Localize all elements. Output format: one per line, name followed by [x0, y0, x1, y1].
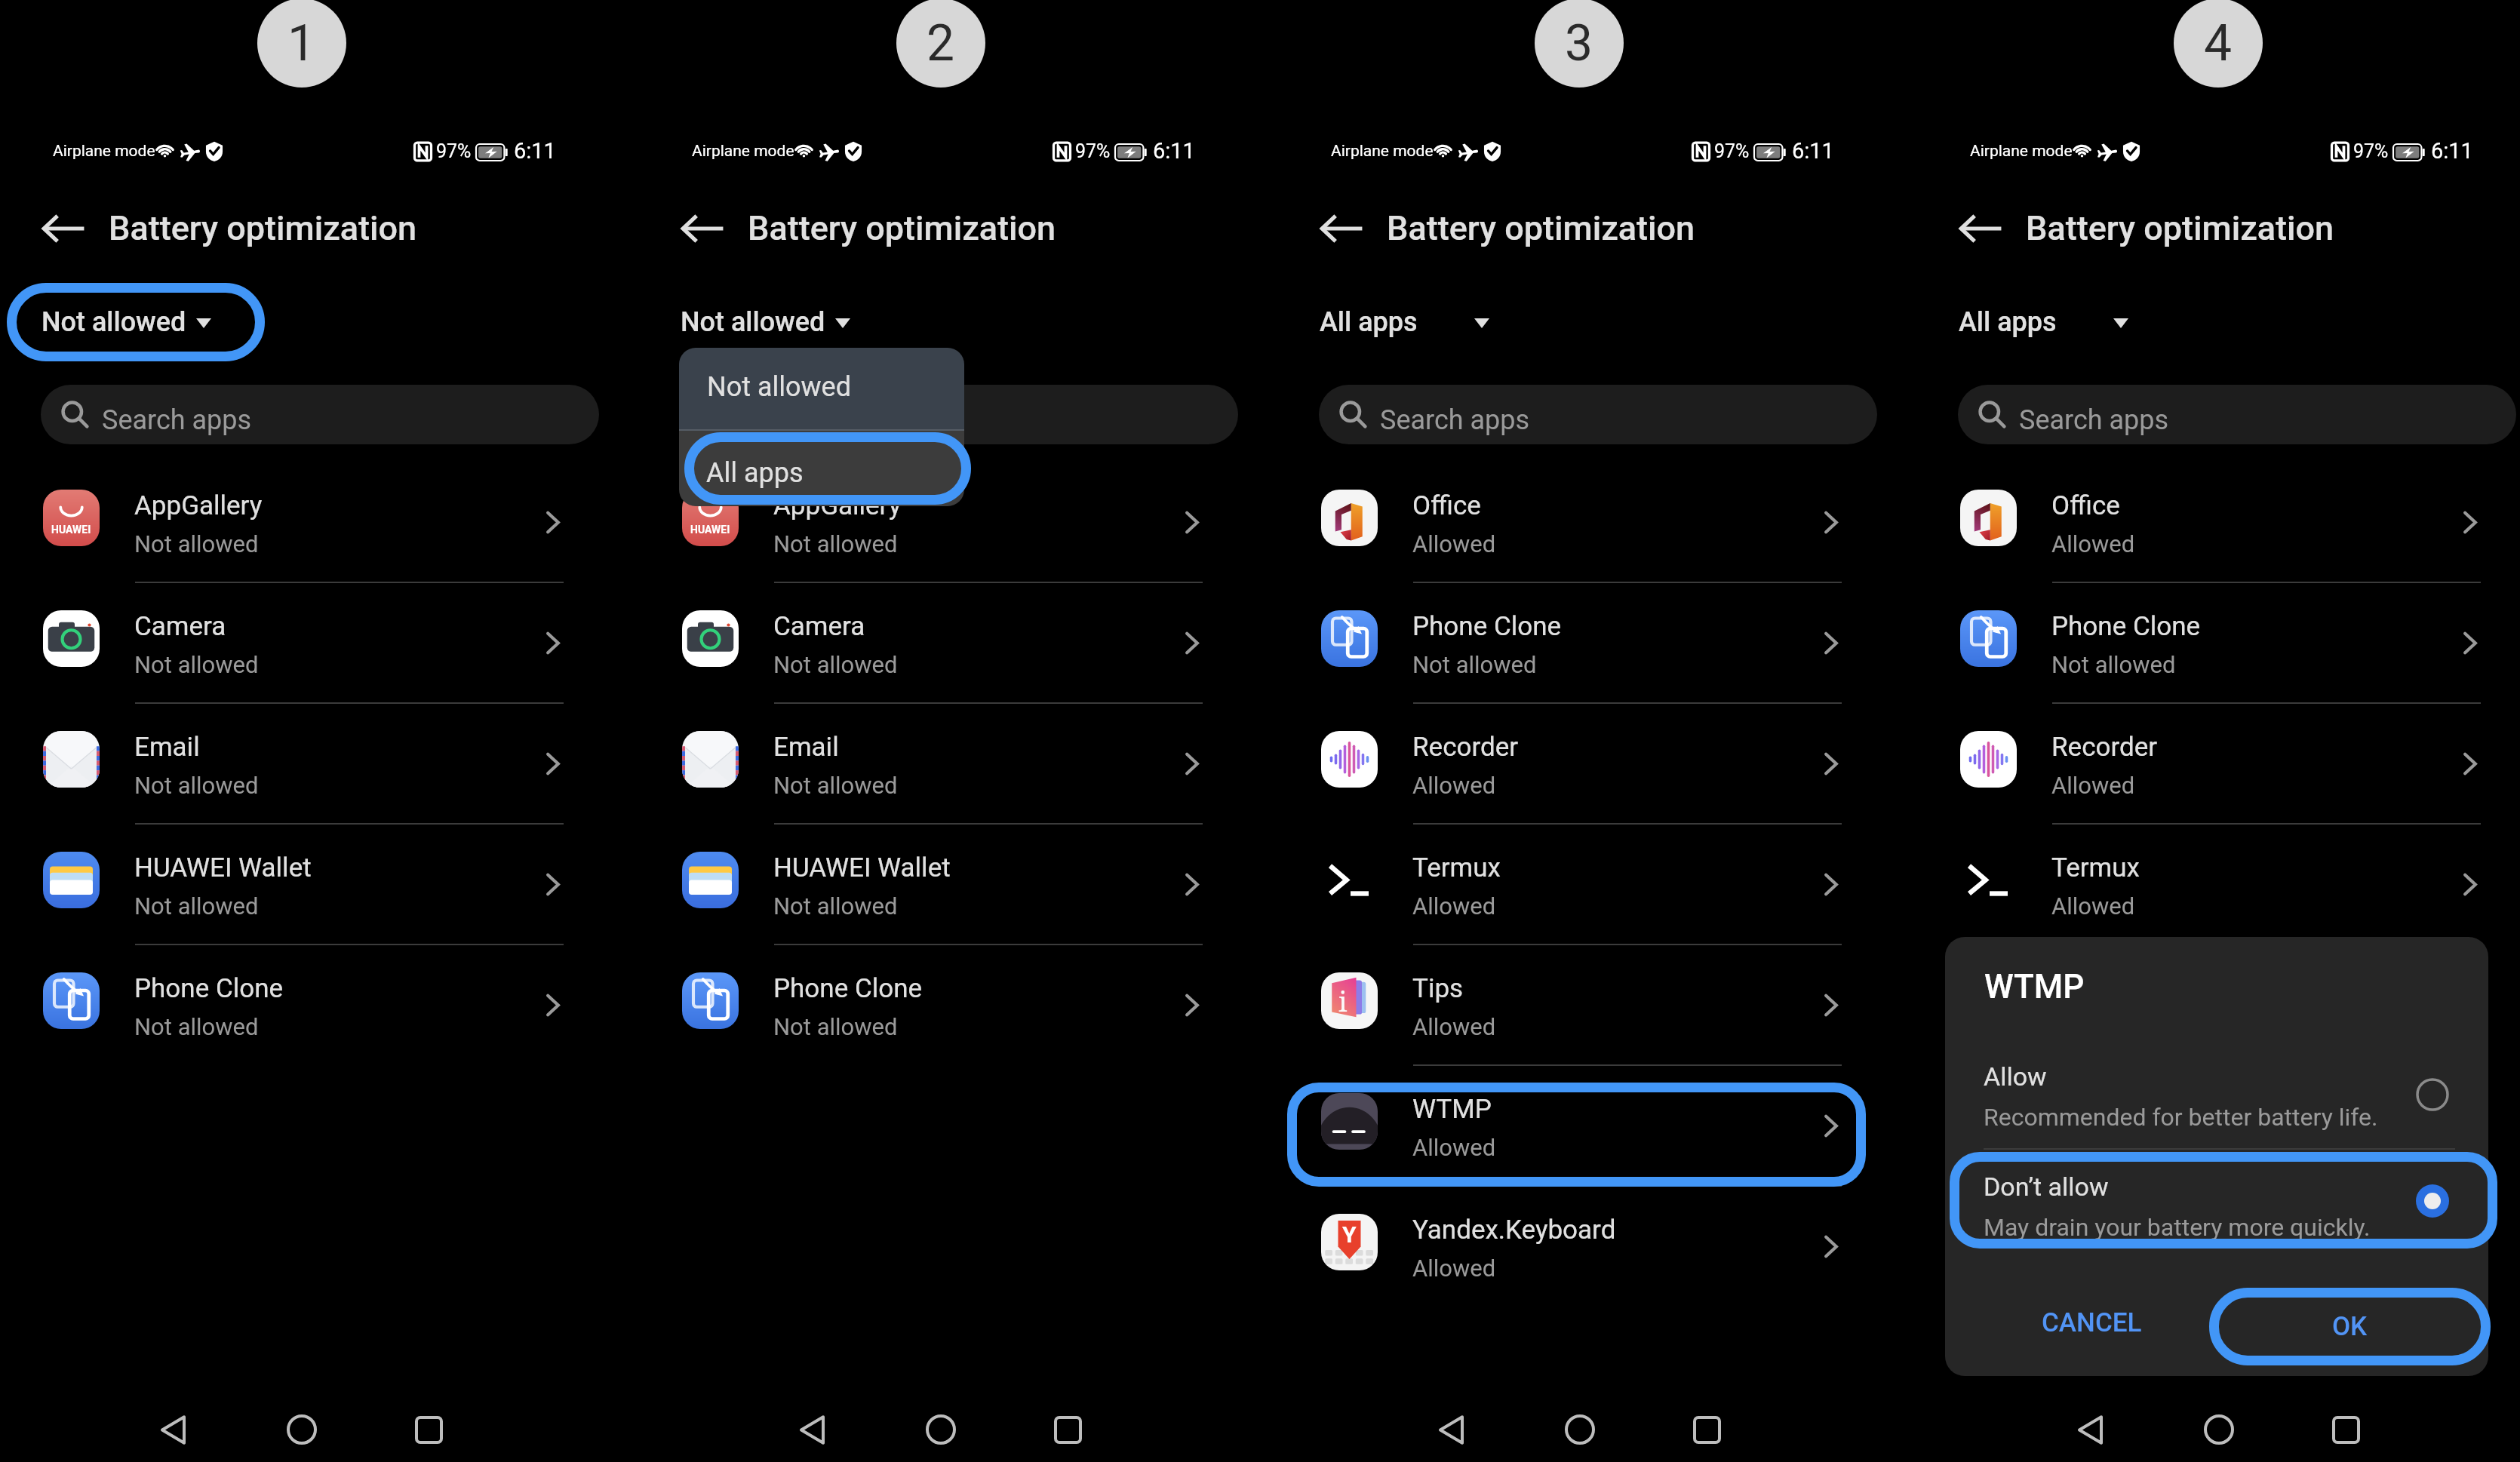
staticText: Not allowed — [773, 772, 898, 799]
button[interactable]: Camera — [0, 582, 639, 703]
button[interactable]: Don’t allow — [1945, 1156, 2488, 1258]
button[interactable]: Back — [1950, 198, 2011, 259]
button[interactable]: Not allowed — [35, 292, 261, 352]
staticText: Allowed — [1412, 772, 1496, 799]
button[interactable]: Y — [1917, 1186, 2520, 1307]
button[interactable]: Termux — [1278, 824, 1917, 944]
staticText: HUAWEI — [51, 524, 91, 536]
staticText: Not allowed — [773, 1013, 898, 1040]
button[interactable]: Email — [639, 703, 1278, 824]
staticText: Airplane mode — [1331, 142, 1434, 161]
staticText: WTMP — [1412, 1094, 1492, 1125]
staticText: Not allowed — [1412, 651, 1537, 678]
button[interactable]: Back — [672, 198, 733, 259]
button[interactable]: HUAWEI — [0, 462, 639, 582]
button[interactable]: CANCEL — [2016, 1288, 2167, 1356]
button[interactable]: i — [1917, 944, 2520, 1065]
button[interactable]: Home — [1535, 1384, 1625, 1462]
staticText: Y — [1981, 1221, 1996, 1248]
button[interactable]: Home — [257, 1384, 347, 1462]
staticText: AppGallery — [773, 490, 902, 521]
staticText: 3 — [1565, 14, 1593, 72]
button[interactable]: HUAWEI — [639, 462, 1278, 582]
button[interactable]: Recents — [1022, 1384, 1113, 1462]
staticText: Not allowed — [134, 651, 259, 678]
staticText: Not allowed — [773, 530, 898, 557]
button[interactable]: Y — [1278, 1186, 1917, 1307]
button[interactable]: Home — [2174, 1384, 2264, 1462]
staticText: Search apps — [741, 404, 891, 436]
button[interactable]: All apps — [679, 431, 964, 506]
staticText: Yandex.Keyboard — [2051, 1215, 2255, 1245]
staticText: Allowed — [2051, 530, 2135, 557]
staticText: All apps — [1959, 306, 2057, 338]
button[interactable]: Email — [0, 703, 639, 824]
button[interactable]: Not allowed — [679, 348, 964, 429]
staticText: Don’t allow — [1984, 1172, 2109, 1202]
staticText: Allowed — [2051, 772, 2135, 799]
button[interactable]: Search apps — [1958, 385, 2516, 444]
button[interactable]: Phone Clone — [0, 944, 639, 1065]
button[interactable]: Office — [1917, 462, 2520, 582]
staticText: Termux — [1412, 852, 1501, 883]
staticText: Allowed — [1412, 530, 1496, 557]
button[interactable]: Not allowed — [674, 292, 900, 352]
staticText: Not allowed — [41, 306, 186, 338]
button[interactable]: All apps — [1313, 292, 1539, 352]
button[interactable]: Phone Clone — [639, 944, 1278, 1065]
button[interactable]: Search apps — [680, 385, 1238, 444]
staticText: Termux — [2051, 852, 2140, 883]
button[interactable]: HUAWEI Wallet — [639, 824, 1278, 944]
button[interactable]: Office — [1278, 462, 1917, 582]
staticText: Tips — [1412, 973, 1464, 1004]
button[interactable]: Search apps — [1319, 385, 1877, 444]
staticText: Allowed — [2051, 1134, 2135, 1161]
staticText: HUAWEI — [690, 524, 730, 536]
button[interactable]: Home — [896, 1384, 986, 1462]
button[interactable]: Search apps — [41, 385, 599, 444]
button[interactable]: i — [1278, 944, 1917, 1065]
staticText: Phone Clone — [134, 973, 284, 1004]
staticText: 97% — [1714, 140, 1750, 162]
button[interactable]: Back — [767, 1384, 857, 1462]
staticText: Allowed — [1412, 1013, 1496, 1040]
button[interactable]: OK — [2209, 1288, 2488, 1365]
button[interactable]: HUAWEI Wallet — [0, 824, 639, 944]
button[interactable]: Camera — [639, 582, 1278, 703]
button[interactable]: Phone Clone — [1278, 582, 1917, 703]
button[interactable]: Termux — [1917, 824, 2520, 944]
button[interactable]: Recorder — [1278, 703, 1917, 824]
button[interactable]: WTMP — [1917, 1065, 2520, 1186]
button[interactable]: Recents — [1661, 1384, 1752, 1462]
staticText: 2 — [927, 14, 955, 72]
staticText: Camera — [773, 611, 865, 642]
staticText: Airplane mode — [1970, 142, 2073, 161]
staticText: Phone Clone — [1412, 611, 1562, 642]
staticText: i — [1338, 983, 1348, 1020]
button[interactable]: Allow — [1945, 1050, 2488, 1148]
staticText: Search apps — [1380, 404, 1530, 436]
button[interactable]: Recents — [383, 1384, 474, 1462]
button[interactable]: All apps — [1952, 292, 2178, 352]
staticText: Email — [134, 732, 200, 763]
staticText: Not allowed — [134, 1013, 259, 1040]
staticText: Battery optimization — [748, 208, 1056, 248]
staticText: Recorder — [2051, 732, 2158, 763]
button[interactable]: WTMP — [1278, 1065, 1917, 1186]
button[interactable]: Back — [1311, 198, 1372, 259]
button[interactable]: Back — [128, 1384, 218, 1462]
staticText: OK — [2332, 1311, 2368, 1342]
button[interactable]: Recents — [2300, 1384, 2391, 1462]
staticText: Allowed — [1412, 1134, 1496, 1161]
staticText: Email — [773, 732, 839, 763]
button[interactable]: Back — [33, 198, 94, 259]
button[interactable]: Recorder — [1917, 703, 2520, 824]
staticText: Y — [1342, 1221, 1357, 1248]
button[interactable]: Phone Clone — [1917, 582, 2520, 703]
button[interactable]: Back — [2045, 1384, 2135, 1462]
staticText: 6:11 — [2431, 138, 2473, 164]
button[interactable]: Back — [1406, 1384, 1496, 1462]
staticText: CANCEL — [2042, 1307, 2142, 1338]
